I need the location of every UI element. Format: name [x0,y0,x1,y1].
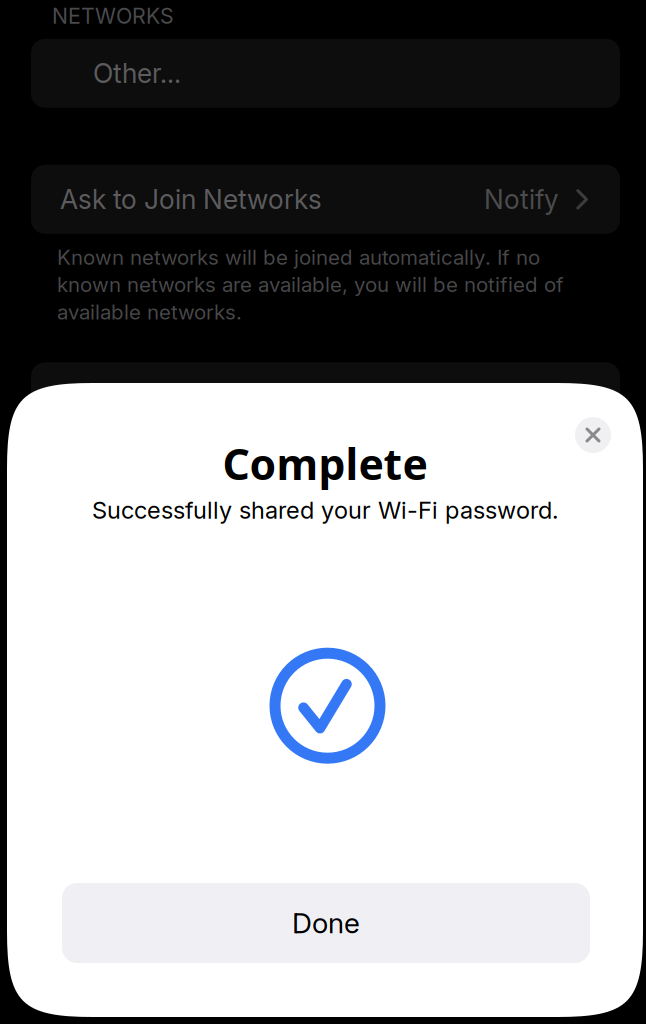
button[interactable]: Done [62,883,590,963]
staticText: Other... [93,57,181,89]
staticText: Complete [222,435,427,492]
staticText: Ask to Join Networks [60,183,322,215]
staticText: Successfully shared your Wi-Fi password. [92,496,558,524]
staticText: known networks are available, you will b… [57,272,564,297]
button[interactable]: Ask to Join Networks [31,165,620,234]
staticText: Notify [484,183,559,215]
staticText: NETWORKS [52,3,174,29]
staticText: Done [292,906,360,940]
staticText: available networks. [57,299,242,324]
button[interactable]: Close [575,417,611,453]
staticText: Known networks will be joined automatica… [57,245,540,270]
button[interactable]: Other... [31,39,620,108]
